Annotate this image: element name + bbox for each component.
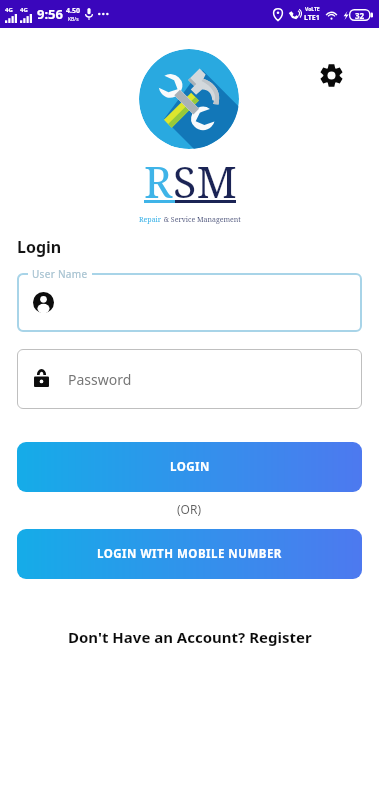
staticText: Don't Have an Account? Register (68, 627, 312, 647)
staticText: (OR) (177, 501, 202, 517)
button[interactable]: LOGIN WITH MOBILE NUMBER (17, 529, 362, 579)
button[interactable] (17, 273, 362, 332)
button[interactable]: Password (17, 349, 362, 409)
staticText: Password (68, 370, 132, 389)
staticText: SM (173, 152, 237, 211)
staticText: & Service Management (162, 215, 241, 225)
staticText: User Name (32, 267, 88, 281)
button[interactable]: LOGIN (17, 442, 362, 492)
staticText: Repair (139, 215, 162, 225)
button[interactable]: Settings (316, 60, 346, 90)
staticText: LOGIN (170, 459, 210, 475)
staticText: R (144, 152, 173, 211)
staticText: KB/s (68, 16, 79, 23)
staticText: LTE1 (304, 13, 320, 23)
staticText: 4.50 (66, 6, 80, 16)
staticText: Login (17, 236, 62, 258)
staticText: VoLTE (305, 6, 320, 13)
staticText: 4G (5, 6, 13, 14)
staticText: 4G (20, 6, 28, 14)
staticText: LOGIN WITH MOBILE NUMBER (97, 546, 282, 562)
staticText: 9:56 (37, 5, 63, 23)
staticText: 32 (355, 10, 365, 21)
button[interactable]: Don't Have an Account? Register (0, 627, 379, 647)
